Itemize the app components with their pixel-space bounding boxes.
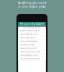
- staticText: in one simple place: [18, 5, 46, 8]
- button[interactable]: How do I delete my account?: [18, 54, 46, 57]
- staticText: How do I delete my account?: [20, 54, 38, 56]
- button[interactable]: How do refunds work?: [18, 36, 46, 40]
- staticText: Is my data encrypted?: [20, 44, 35, 46]
- staticText: Frequently Asked: [20, 22, 44, 26]
- button[interactable]: Which cards do you accept?: [18, 50, 46, 54]
- button[interactable]: How do I contact support?: [18, 47, 46, 50]
- staticText: How do I reset my password?: [20, 30, 40, 32]
- button[interactable]: Is my data encrypted?: [18, 43, 46, 47]
- staticText: How can we help you today?: [22, 27, 41, 29]
- staticText: Which cards do you accept?: [20, 51, 40, 53]
- staticText: Do you offer student pricing?: [20, 58, 40, 60]
- button[interactable]: Do you offer student pricing?: [18, 57, 46, 61]
- button[interactable]: How do I reset my password?: [18, 29, 46, 33]
- staticText: How do refunds work?: [20, 37, 36, 39]
- staticText: Where do I find my orders?: [20, 33, 39, 35]
- staticText: Everything you need: [17, 1, 46, 5]
- staticText: Can I change my plan later?: [20, 40, 38, 42]
- button[interactable]: Where do I find my orders?: [18, 33, 46, 36]
- staticText: How do I contact support?: [20, 47, 37, 49]
- button[interactable]: Can I change my plan later?: [18, 40, 46, 43]
